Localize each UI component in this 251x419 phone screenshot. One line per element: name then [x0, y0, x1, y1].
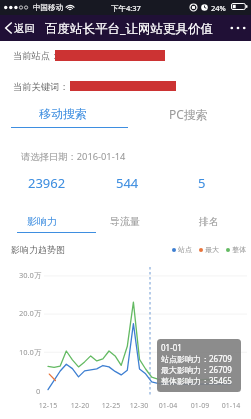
staticText: 下午4:37 — [111, 3, 141, 13]
staticText: PC搜索 — [169, 106, 208, 122]
staticText: 01-04 — [155, 401, 181, 411]
button[interactable]: PC搜索 — [125, 104, 251, 123]
staticText: 影响力 — [27, 215, 57, 228]
staticText: 01-14 — [218, 401, 244, 411]
staticText: 30.0万 — [19, 270, 42, 280]
staticText: 24% — [211, 3, 226, 13]
button[interactable]: 导流量 — [83, 212, 167, 231]
staticText: 百度站长平台_让网站更具价值 — [45, 20, 214, 37]
staticText: 排名 — [199, 215, 219, 228]
button[interactable]: More options — [224, 15, 251, 41]
button[interactable]: 移动搜索 — [0, 104, 125, 123]
staticText: 544 — [116, 174, 139, 191]
button[interactable]: 影响力 — [0, 212, 83, 231]
staticText: 23962 — [28, 174, 66, 191]
staticText: 整体影响力：35465 — [161, 375, 232, 386]
staticText: 12-15 — [35, 401, 61, 411]
staticText: 导流量 — [110, 215, 140, 228]
staticText: 站点 — [178, 245, 192, 254]
staticText: 当前关键词： — [13, 81, 69, 93]
staticText: 中国移动 — [33, 3, 63, 12]
staticText: 20.0万 — [19, 308, 42, 318]
button[interactable]: 排名 — [167, 212, 251, 231]
staticText: 影响力趋势图 — [11, 244, 65, 255]
staticText: 12-20 — [67, 401, 93, 411]
staticText: 10.0万 — [19, 347, 42, 357]
staticText: 最大 — [205, 245, 219, 254]
staticText: 移动搜索 — [39, 106, 87, 121]
staticText: 请选择日期：2016-01-14 — [21, 150, 126, 163]
staticText: 整体 — [232, 245, 246, 254]
staticText: 01-09 — [187, 401, 213, 411]
button[interactable]: 23962 — [17, 174, 77, 191]
staticText: 0 — [36, 386, 41, 396]
staticText: 站点影响力：26709 — [161, 353, 232, 364]
staticText: 12-30 — [126, 401, 152, 411]
button[interactable]: 544 — [97, 174, 157, 191]
staticText: 最大影响力：26709 — [161, 364, 232, 375]
button[interactable]: 5 — [172, 174, 232, 191]
staticText: 当前站点： — [13, 50, 60, 62]
staticText: 5 — [198, 174, 206, 191]
button[interactable]: 返回 — [0, 15, 39, 41]
staticText: 返回 — [14, 22, 35, 35]
staticText: 12-25 — [98, 401, 124, 411]
staticText: 01-01 — [161, 342, 182, 353]
